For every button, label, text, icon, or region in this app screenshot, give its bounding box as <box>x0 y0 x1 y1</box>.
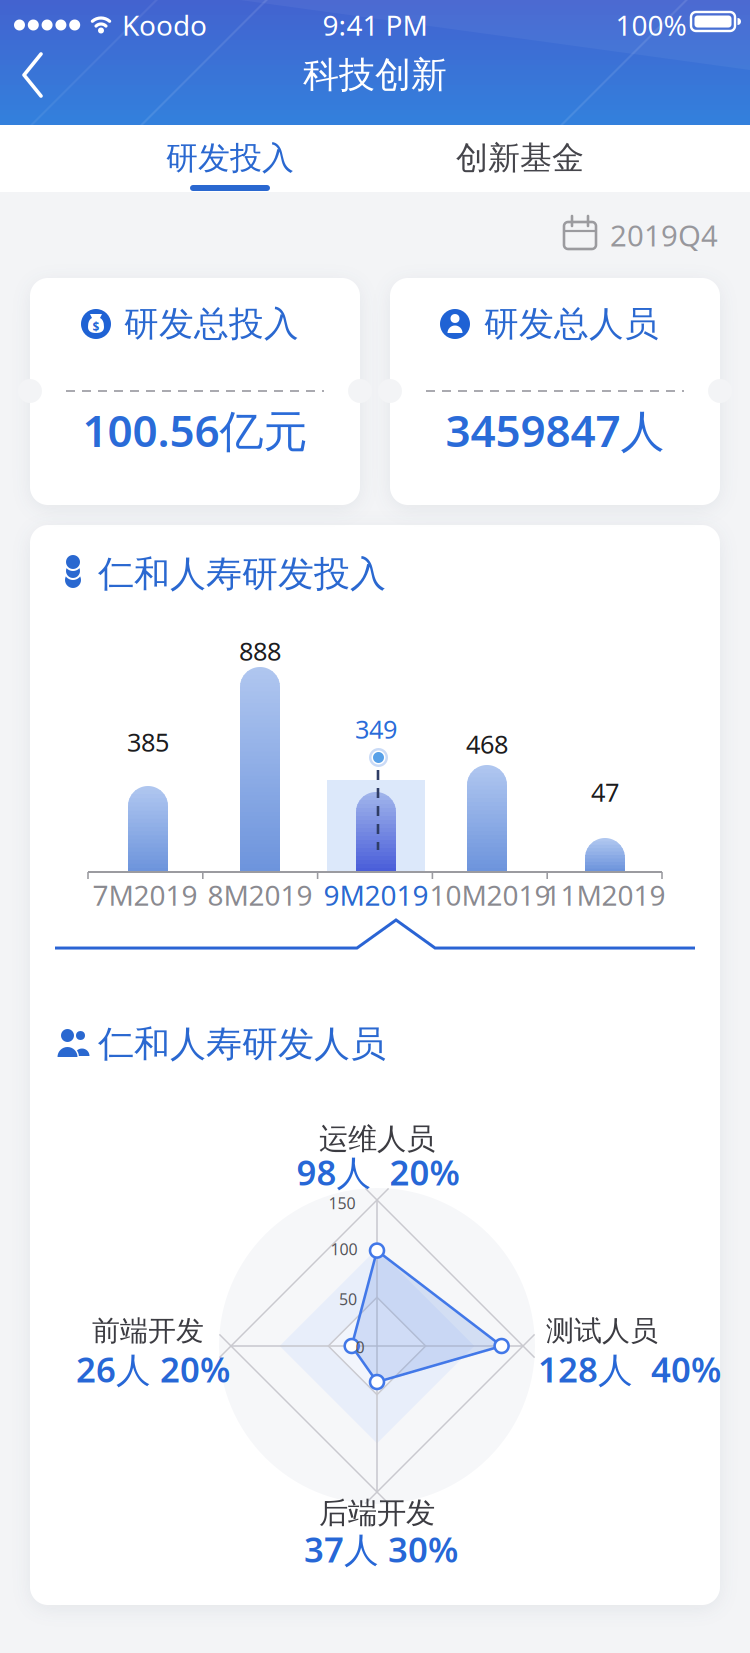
staticText: 100 <box>330 1238 357 1260</box>
staticText: 仁和人寿研发投入 <box>98 552 386 596</box>
staticText: 37人 30% <box>304 1526 458 1572</box>
staticText: 3459847人 <box>445 401 664 459</box>
staticText: 150 <box>328 1192 355 1214</box>
staticText: 测试人员 <box>546 1314 658 1348</box>
staticText: 仁和人寿研发人员 <box>98 1022 386 1066</box>
staticText: 47 <box>591 775 619 809</box>
button[interactable]: 11M2019 <box>547 640 661 912</box>
staticText: 研发总人员 <box>484 303 659 345</box>
staticText: 468 <box>466 727 508 761</box>
button[interactable]: 创新基金 <box>375 125 750 192</box>
staticText: 888 <box>239 634 281 668</box>
button[interactable]: 10M2019 <box>432 640 546 912</box>
button[interactable]: 8M2019 <box>203 640 317 912</box>
staticText: 26人 20% <box>76 1346 230 1392</box>
staticText: 50 <box>339 1288 357 1310</box>
staticText: 研发投入 <box>166 138 294 178</box>
staticText: 9:41 PM <box>322 6 427 44</box>
staticText: 385 <box>127 725 169 759</box>
staticText: 科技创新 <box>303 53 447 97</box>
staticText: 前端开发 <box>92 1314 204 1348</box>
staticText: 128人 40% <box>538 1346 721 1392</box>
staticText: $ <box>92 318 99 334</box>
staticText: 100% <box>615 6 686 44</box>
button[interactable]: 9M2019 <box>318 640 432 912</box>
button[interactable]: Select quarter 2019Q4 <box>552 208 732 262</box>
staticText: 0 <box>355 1336 364 1358</box>
staticText: 运维人员 <box>319 1121 435 1157</box>
staticText: 98人 20% <box>296 1149 459 1195</box>
button[interactable]: 研发投入 <box>0 125 375 192</box>
staticText: 2019Q4 <box>610 215 718 254</box>
staticText: 100.56亿元 <box>82 401 307 459</box>
button[interactable]: 7M2019 <box>88 640 202 912</box>
staticText: 10M2019 <box>429 876 550 914</box>
staticText: Koodo <box>122 6 207 44</box>
staticText: 9M2019 <box>323 876 428 914</box>
staticText: 11M2019 <box>544 876 665 914</box>
staticText: 研发总投入 <box>124 303 299 345</box>
staticText: 7M2019 <box>92 876 197 914</box>
button[interactable]: Back <box>0 0 64 125</box>
staticText: 后端开发 <box>319 1495 435 1531</box>
staticText: 创新基金 <box>456 138 584 178</box>
staticText: 8M2019 <box>207 876 312 914</box>
staticText: 349 <box>355 712 397 746</box>
